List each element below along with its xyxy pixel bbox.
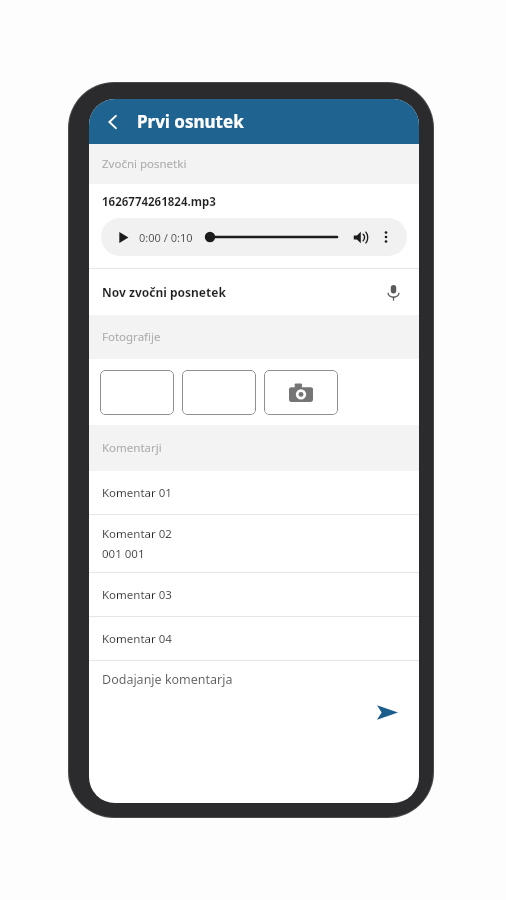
button[interactable]: Send [371,696,403,728]
staticText: Prvi osnutek [137,110,244,133]
button[interactable]: Take photo [264,370,338,415]
button[interactable]: More options [375,226,397,248]
button[interactable]: Photo 2 [182,370,256,415]
staticText: Fotografije [102,329,161,345]
staticText: 0:00 / 0:10 [139,230,193,245]
staticText: Komentarji [102,440,162,456]
staticText: Nov zvočni posnetek [102,284,226,300]
button[interactable]: Play [113,227,133,247]
staticText: Komentar 04 [102,631,172,647]
button[interactable]: Back [95,104,131,140]
staticText: Komentar 03 [102,587,172,603]
button[interactable]: Dodajanje komentarja [89,671,419,688]
button[interactable]: Komentar 03 [89,573,419,616]
button[interactable]: Play [101,218,407,256]
staticText: Komentar 02 [102,526,172,542]
staticText: Zvočni posnetki [102,156,187,172]
staticText: 1626774261824.mp3 [102,194,216,210]
staticText: 001 001 [102,546,145,562]
button[interactable]: Komentar 01 [89,471,419,514]
button[interactable]: Komentar 02 [89,515,419,572]
button[interactable]: Photo 1 [100,370,174,415]
button[interactable]: Nov zvočni posnetek [89,269,419,315]
other: Record audio [380,279,406,305]
button[interactable]: Volume [349,226,371,248]
staticText: Komentar 01 [102,485,172,501]
button[interactable]: Komentar 04 [89,617,419,660]
